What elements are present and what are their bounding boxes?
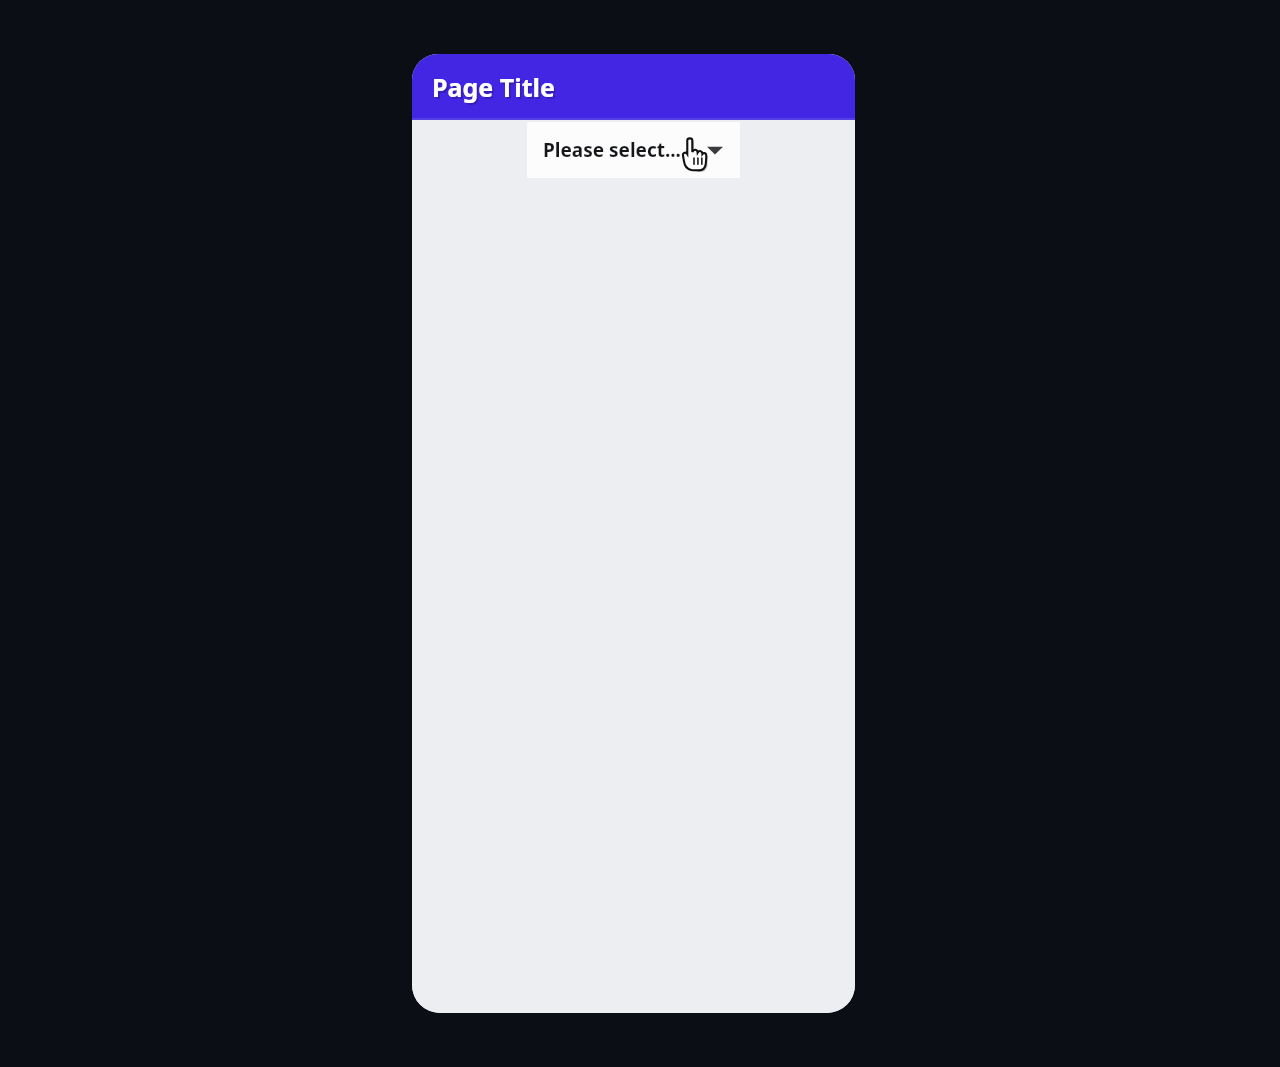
button[interactable]: Please select...	[527, 122, 740, 178]
staticText: Please select...	[543, 137, 681, 163]
staticText: Page Title	[432, 70, 555, 104]
other: Open dropdown	[704, 139, 726, 161]
staticText: Page Title	[434, 72, 557, 106]
